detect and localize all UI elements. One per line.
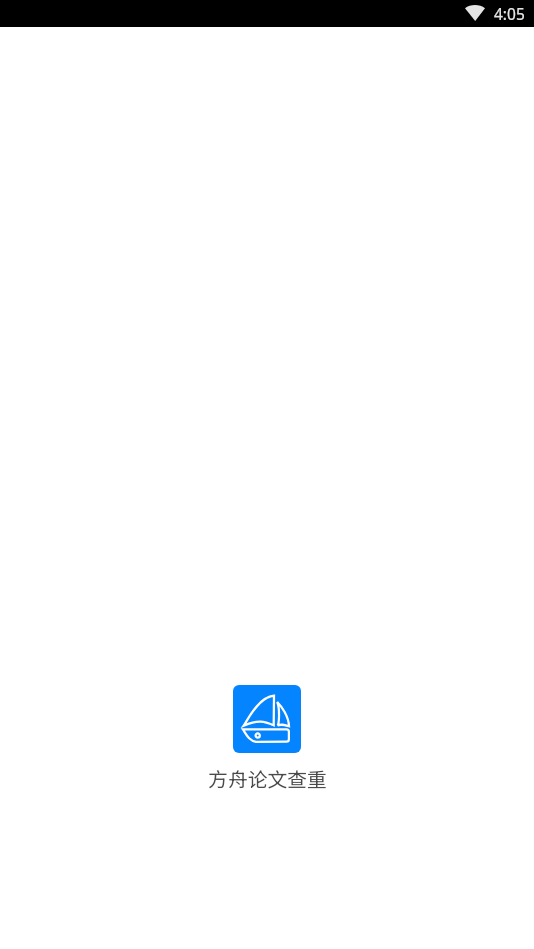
staticText: 4:05 [494,3,525,24]
staticText: 方舟论文查重 [208,764,327,793]
button[interactable]: 方舟论文查重 app icon [233,685,301,753]
other: Wi-Fi signal [465,6,485,21]
